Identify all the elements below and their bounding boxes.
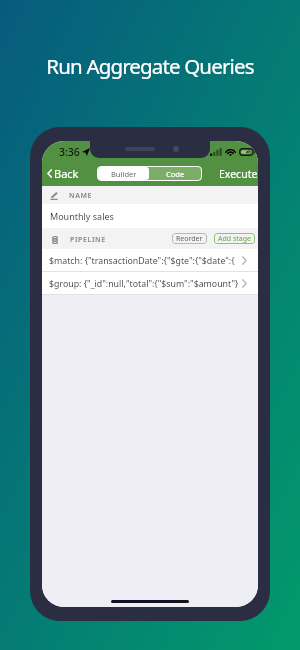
staticText: 3:36: [59, 145, 80, 159]
staticText: Builder: [111, 169, 137, 179]
staticText: Execute: [219, 167, 258, 181]
staticText: $group: {"_id":null,"total":{"$sum":"$am…: [49, 278, 239, 290]
button[interactable]: Code: [149, 167, 201, 180]
button[interactable]: Builder: [98, 167, 149, 180]
button[interactable]: Back: [44, 163, 85, 184]
staticText: Run Aggregate Queries: [0, 52, 300, 80]
button[interactable]: Execute: [215, 164, 258, 184]
button[interactable]: Reorder: [172, 233, 207, 244]
button[interactable]: $match: {"transactionDate":{"$gte":{"$da…: [42, 249, 258, 272]
staticText: NAME: [69, 191, 93, 201]
staticText: Code: [166, 169, 185, 179]
button[interactable]: Mounthly sales: [42, 204, 258, 228]
button[interactable]: $group: {"_id":null,"total":{"$sum":"$am…: [42, 272, 258, 295]
staticText: Add stage: [218, 234, 251, 244]
staticText: Reorder: [176, 234, 203, 244]
staticText: $match: {"transactionDate":{"$gte":{"$da…: [49, 255, 235, 267]
staticText: Mounthly sales: [50, 210, 114, 222]
staticText: Back: [54, 166, 79, 181]
button[interactable]: Add stage: [214, 233, 255, 244]
staticText: PIPELINE: [70, 235, 106, 245]
